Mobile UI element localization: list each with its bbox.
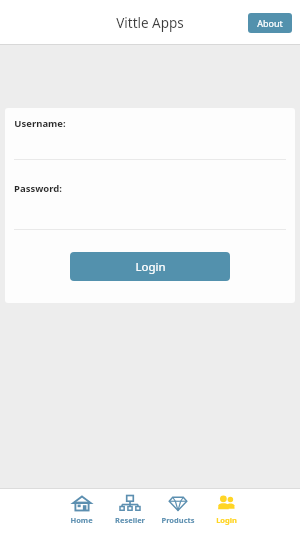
- button[interactable]: Home: [57, 492, 106, 525]
- staticText: Login: [216, 515, 237, 525]
- staticText: Products: [161, 515, 195, 525]
- staticText: Vittle Apps: [116, 14, 184, 32]
- button[interactable]: Password:: [5, 160, 295, 229]
- button[interactable]: About: [248, 13, 292, 33]
- button[interactable]: Login: [70, 252, 230, 281]
- staticText: Username:: [14, 117, 66, 130]
- staticText: Reseller: [115, 515, 145, 525]
- button[interactable]: Login: [202, 492, 250, 525]
- staticText: Password:: [14, 182, 62, 195]
- button[interactable]: Products: [154, 492, 202, 525]
- button[interactable]: Username:: [5, 108, 295, 159]
- button[interactable]: Reseller: [106, 492, 154, 525]
- staticText: About: [257, 17, 283, 29]
- staticText: Home: [70, 515, 93, 525]
- staticText: Login: [135, 259, 166, 275]
